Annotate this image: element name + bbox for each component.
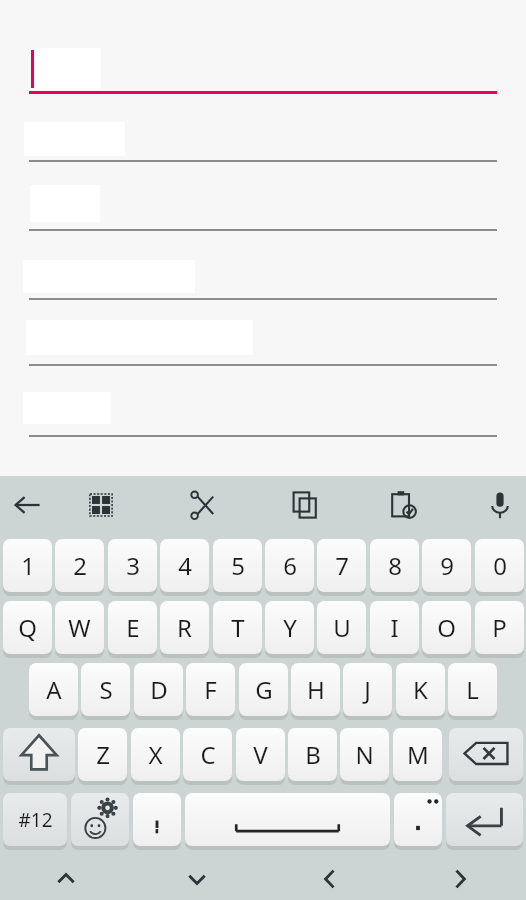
button[interactable]: R (160, 601, 209, 654)
staticText: 1 (21, 549, 35, 582)
staticText: C (200, 738, 216, 771)
button[interactable]: K (396, 663, 445, 716)
button[interactable]: 8 (370, 539, 419, 592)
staticText: O (437, 611, 456, 644)
staticText: L (466, 673, 479, 706)
staticText: Q (18, 611, 37, 644)
button[interactable]: H (291, 663, 340, 716)
button[interactable]: Emoji and settings (71, 793, 129, 846)
button[interactable]: E (108, 601, 157, 654)
button[interactable]: Move right (438, 857, 482, 900)
button[interactable]: O (422, 601, 471, 654)
button[interactable]: Select all (77, 481, 125, 529)
button[interactable]: Z (78, 728, 127, 781)
button[interactable]: Symbols (3, 793, 67, 846)
button[interactable]: Paste (379, 481, 427, 529)
button[interactable]: J (343, 663, 392, 716)
button[interactable]: D (134, 663, 183, 716)
staticText: K (413, 673, 428, 706)
button[interactable]: Comma (133, 793, 181, 846)
button[interactable]: Period (394, 793, 442, 846)
button[interactable]: S (81, 663, 130, 716)
button[interactable]: Move down (175, 857, 219, 900)
button[interactable]: T (213, 601, 262, 654)
staticText: U (333, 611, 351, 644)
staticText: 9 (440, 549, 454, 582)
staticText: M (407, 738, 429, 771)
staticText: E (126, 611, 140, 644)
button[interactable]: U (317, 601, 366, 654)
button[interactable]: 6 (265, 539, 314, 592)
staticText: D (150, 673, 168, 706)
button[interactable]: I (370, 601, 419, 654)
staticText: H (307, 673, 325, 706)
staticText: 6 (283, 549, 297, 582)
staticText: T (231, 611, 245, 644)
button[interactable]: C (183, 728, 232, 781)
button[interactable]: Backspace (449, 728, 523, 781)
staticText: 4 (178, 549, 192, 582)
button[interactable]: Shift (3, 728, 75, 781)
staticText: 0 (493, 549, 507, 582)
button[interactable]: Enter (446, 793, 523, 846)
button[interactable]: 4 (160, 539, 209, 592)
staticText: S (99, 673, 113, 706)
staticText: Y (283, 611, 297, 644)
button[interactable]: P (475, 601, 524, 654)
button[interactable] (31, 48, 101, 89)
button[interactable]: Move up (44, 857, 88, 900)
staticText: A (46, 673, 62, 706)
staticText: G (255, 673, 273, 706)
button[interactable]: Cut (179, 481, 227, 529)
staticText: 7 (335, 549, 349, 582)
button[interactable]: A (29, 663, 78, 716)
staticText: Z (96, 738, 110, 771)
button[interactable]: B (288, 728, 337, 781)
staticText: F (204, 673, 217, 706)
button[interactable]: Y (265, 601, 314, 654)
button[interactable]: M (393, 728, 442, 781)
staticText: 8 (388, 549, 402, 582)
staticText: P (492, 611, 507, 644)
button[interactable]: F (186, 663, 235, 716)
staticText: 5 (231, 549, 245, 582)
staticText: 3 (126, 549, 140, 582)
button[interactable]: N (340, 728, 389, 781)
button[interactable]: 9 (422, 539, 471, 592)
button[interactable]: Q (3, 601, 52, 654)
staticText: 2 (73, 549, 87, 582)
staticText: X (148, 738, 163, 771)
button[interactable]: Back (3, 481, 51, 529)
button[interactable]: X (131, 728, 180, 781)
button[interactable]: L (448, 663, 497, 716)
staticText: B (305, 738, 321, 771)
button[interactable]: W (55, 601, 104, 654)
button[interactable]: 2 (55, 539, 104, 592)
staticText: N (355, 738, 374, 771)
button[interactable]: Space (185, 793, 390, 846)
staticText: J (364, 673, 371, 706)
staticText: #12 (18, 807, 53, 833)
staticText: W (68, 611, 91, 644)
staticText: R (177, 611, 192, 644)
button[interactable]: 7 (317, 539, 366, 592)
staticText: V (253, 738, 268, 771)
button[interactable]: 5 (213, 539, 262, 592)
button[interactable]: 1 (3, 539, 52, 592)
staticText: I (390, 611, 399, 644)
button[interactable]: 3 (108, 539, 157, 592)
button[interactable]: V (236, 728, 285, 781)
button[interactable]: Copy (281, 481, 329, 529)
button[interactable]: Move left (308, 857, 352, 900)
button[interactable]: G (239, 663, 288, 716)
button[interactable]: 0 (475, 539, 524, 592)
button[interactable]: Voice input (476, 481, 524, 529)
